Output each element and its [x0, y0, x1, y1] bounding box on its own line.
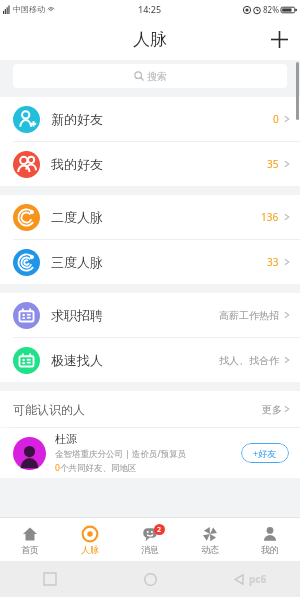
button[interactable]: 人脉	[60, 518, 120, 561]
button[interactable]: 动态	[180, 518, 240, 561]
staticText: 消息	[141, 544, 159, 555]
staticText: 找人、找合作	[219, 354, 279, 367]
button[interactable]: 求职招聘	[0, 293, 300, 337]
staticText: 极速找人	[51, 352, 103, 368]
button[interactable]: 三度人脉	[0, 240, 300, 284]
staticText: +好友	[253, 447, 277, 459]
staticText: 我的好友	[51, 156, 103, 172]
staticText: 首页	[21, 544, 39, 555]
staticText: 更多	[262, 403, 282, 416]
staticText: 搜索	[147, 70, 167, 83]
button[interactable]: 首页	[0, 518, 60, 561]
button[interactable]: 我的	[240, 518, 300, 561]
staticText: 14:25	[138, 3, 162, 15]
staticText: 可能认识的人	[13, 402, 85, 417]
staticText: 33	[267, 255, 279, 269]
button[interactable]: Recents	[0, 561, 100, 597]
staticText: 0	[273, 112, 279, 126]
staticText: 35	[267, 157, 279, 171]
button[interactable]: 2	[120, 518, 180, 561]
staticText: 新的好友	[51, 111, 103, 127]
staticText: 中国移动	[13, 4, 45, 14]
staticText: 82%	[263, 4, 279, 15]
staticText: 三度人脉	[51, 254, 103, 270]
button[interactable]: 新的好友	[0, 97, 300, 141]
button[interactable]: +好友	[241, 443, 289, 463]
button[interactable]: Add	[258, 18, 300, 60]
button[interactable]: 极速找人	[0, 338, 300, 382]
button[interactable]: 我的好友	[0, 142, 300, 186]
button[interactable]: 搜索	[13, 64, 287, 88]
staticText: pc6	[249, 572, 267, 586]
staticText: 0	[55, 462, 60, 474]
staticText: 136	[261, 210, 279, 224]
staticText: 二度人脉	[51, 209, 103, 225]
staticText: 人脉	[81, 544, 99, 555]
staticText: 杜源	[55, 432, 77, 446]
button[interactable]: 可能认识的人	[0, 391, 300, 427]
button[interactable]: 杜源	[0, 428, 300, 478]
staticText: 个共同好友、同地区	[60, 463, 137, 474]
staticText: 我的	[261, 544, 279, 555]
staticText: 2	[157, 525, 162, 535]
staticText: 金智塔重庆分公司 | 造价员/预算员	[55, 448, 187, 460]
staticText: 动态	[201, 544, 219, 555]
staticText: 高薪工作热招	[219, 309, 279, 322]
button[interactable]: 二度人脉	[0, 195, 300, 239]
staticText: 求职招聘	[51, 307, 103, 323]
staticText: 人脉	[133, 29, 167, 50]
button[interactable]: Home	[100, 561, 200, 597]
button[interactable]: Back	[200, 561, 300, 597]
